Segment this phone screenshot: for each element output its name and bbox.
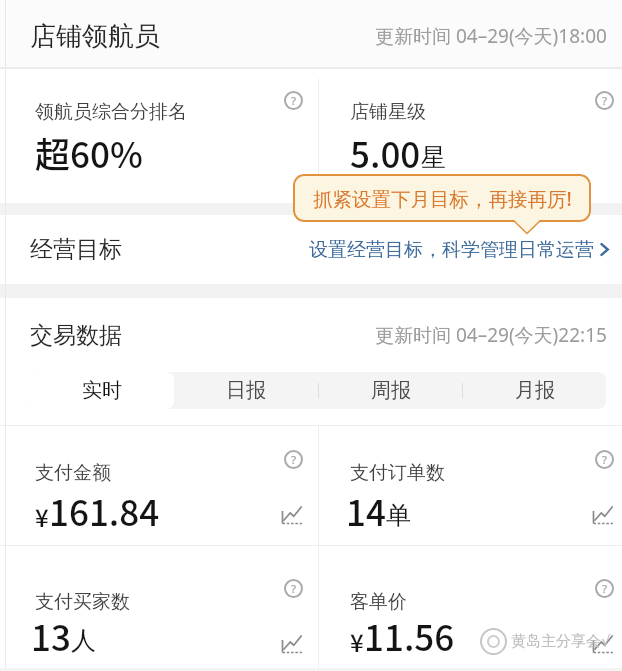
staticText: 更新时间 04–29(今天)22:15 xyxy=(375,322,607,348)
button[interactable]: 领航员综合分排名 xyxy=(0,69,318,203)
button[interactable]: 周报 xyxy=(319,372,462,409)
button[interactable]: 实时 xyxy=(30,372,174,409)
staticText: 周报 xyxy=(371,378,411,403)
staticText: ¥ xyxy=(350,624,364,659)
staticText: 13 xyxy=(31,610,71,661)
staticText: ? xyxy=(291,93,297,109)
staticText: 单 xyxy=(386,500,411,531)
staticText: 11.56 xyxy=(364,610,455,661)
button[interactable]: 经营目标 xyxy=(0,215,622,284)
staticText: ? xyxy=(291,581,297,597)
button[interactable]: 店铺星级 xyxy=(319,69,622,203)
staticText: 支付买家数 xyxy=(35,590,130,614)
staticText: 实时 xyxy=(82,378,122,403)
staticText: 超60% xyxy=(35,127,143,178)
staticText: 星 xyxy=(421,142,446,173)
staticText: 人 xyxy=(71,625,96,656)
button[interactable]: 支付买家数 xyxy=(0,546,318,671)
staticText: 支付订单数 xyxy=(350,461,445,485)
staticText: ? xyxy=(602,452,608,468)
button[interactable]: 支付订单数 xyxy=(319,426,622,545)
button[interactable]: 月报 xyxy=(463,372,606,409)
button[interactable]: 日报 xyxy=(174,372,318,409)
staticText: 月报 xyxy=(515,378,555,403)
staticText: 店铺星级 xyxy=(350,100,426,124)
staticText: 5.00 xyxy=(350,127,421,178)
staticText: 日报 xyxy=(226,378,266,403)
staticText: 客单价 xyxy=(350,590,407,614)
button[interactable]: 支付金额 xyxy=(0,426,318,545)
staticText: ? xyxy=(291,452,297,468)
staticText: 店铺领航员 xyxy=(30,20,160,53)
staticText: 黄岛主分享会√ xyxy=(511,632,611,651)
staticText: 161.84 xyxy=(49,485,160,536)
button[interactable]: 抓紧设置下月目标，再接再厉! xyxy=(293,174,591,222)
staticText: ? xyxy=(602,93,608,109)
staticText: 支付金额 xyxy=(35,461,111,485)
staticText: 交易数据 xyxy=(30,321,122,350)
staticText: 14 xyxy=(346,485,386,536)
button[interactable]: 客单价 xyxy=(319,546,622,671)
staticText: 更新时间 04–29(今天)18:00 xyxy=(375,23,607,49)
staticText: 领航员综合分排名 xyxy=(35,100,187,124)
staticText: 抓紧设置下月目标，再接再厉! xyxy=(313,185,572,212)
staticText: 经营目标 xyxy=(30,235,122,264)
staticText: ¥ xyxy=(35,499,49,534)
staticText: 设置经营目标，科学管理日常运营 xyxy=(309,238,594,262)
staticText: ? xyxy=(602,581,608,597)
